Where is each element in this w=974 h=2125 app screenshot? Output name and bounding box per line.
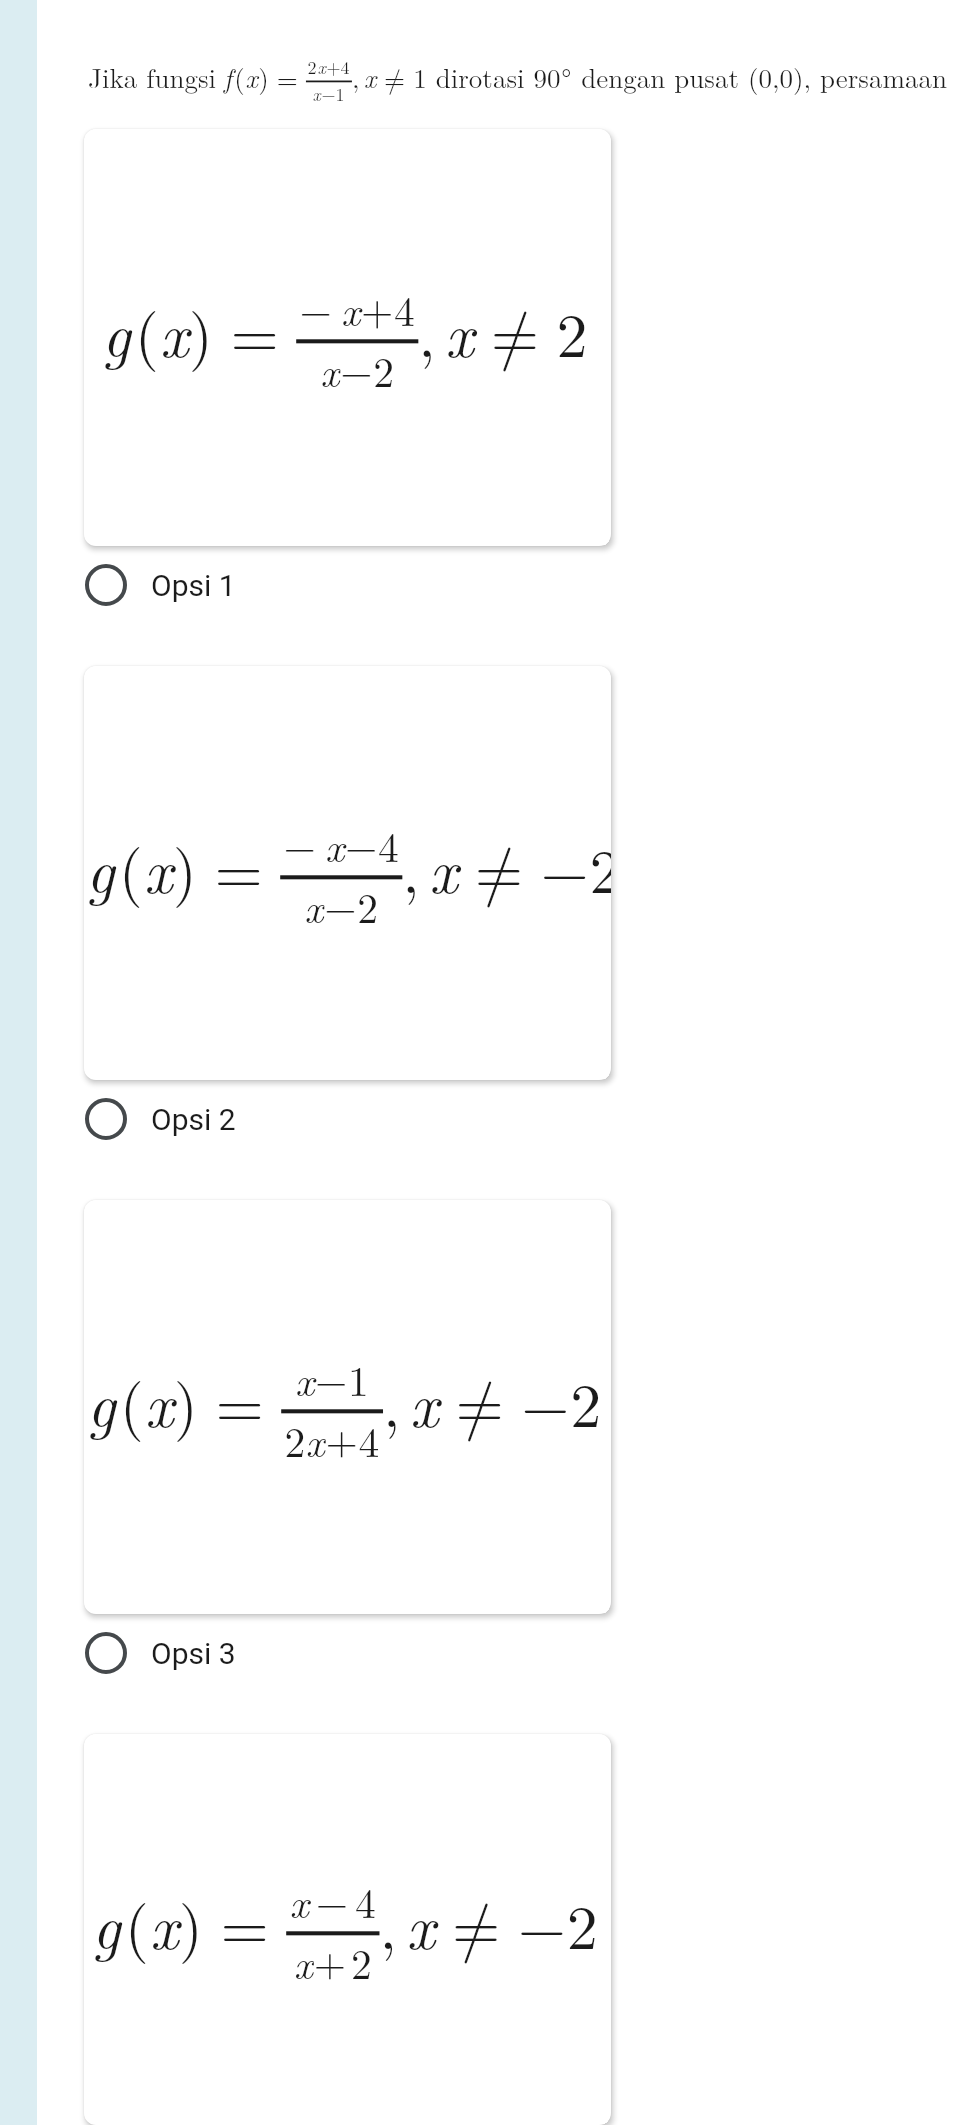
- staticText: Opsi 1: [151, 568, 236, 603]
- staticText: Opsi 2: [151, 1102, 236, 1137]
- button[interactable]: [84, 666, 611, 1080]
- button[interactable]: [84, 1200, 611, 1614]
- button[interactable]: Opsi 2: [84, 1084, 974, 1154]
- button[interactable]: Opsi 3: [84, 1618, 974, 1688]
- button[interactable]: Opsi 1: [84, 550, 974, 620]
- button[interactable]: [84, 129, 611, 546]
- staticText: Opsi 3: [151, 1636, 236, 1671]
- button[interactable]: [84, 1734, 611, 2125]
